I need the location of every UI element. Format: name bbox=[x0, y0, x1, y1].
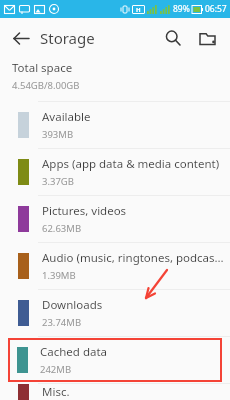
staticText: 1.39MB bbox=[42, 269, 76, 282]
staticText: Cached data bbox=[40, 344, 108, 360]
staticText: 3.37GB bbox=[42, 175, 74, 188]
button[interactable]: Audio (music, ringtones, podcas… bbox=[0, 243, 230, 289]
button[interactable]: Downloads bbox=[0, 290, 230, 336]
staticText: 62.63MB bbox=[42, 222, 82, 235]
staticText: Total space bbox=[12, 60, 73, 76]
staticText: 89% bbox=[173, 3, 190, 15]
button[interactable]: Misc. bbox=[0, 384, 230, 400]
staticText: H bbox=[136, 6, 141, 14]
staticText: Downloads bbox=[42, 297, 103, 313]
staticText: 4.54GB/8.00GB bbox=[12, 79, 80, 92]
staticText: 393MB bbox=[42, 128, 74, 141]
button[interactable]: Pictures, videos bbox=[0, 196, 230, 242]
staticText: Misc. bbox=[42, 384, 70, 400]
button[interactable]: Cached data bbox=[8, 338, 222, 382]
staticText: 242MB bbox=[40, 363, 72, 376]
button[interactable]: Back bbox=[6, 23, 36, 53]
staticText: 06:57 bbox=[205, 3, 227, 15]
staticText: Audio (music, ringtones, podcas… bbox=[42, 250, 224, 266]
button[interactable]: Available bbox=[0, 102, 230, 148]
button[interactable]: Share folder bbox=[190, 21, 224, 55]
staticText: 23.74MB bbox=[42, 316, 82, 329]
staticText: Pictures, videos bbox=[42, 203, 127, 219]
button[interactable]: Search bbox=[156, 21, 190, 55]
button[interactable]: Apps (app data & media content) bbox=[0, 149, 230, 195]
staticText: Available bbox=[42, 109, 91, 125]
staticText: Apps (app data & media content) bbox=[42, 156, 220, 172]
staticText: Storage bbox=[40, 28, 95, 48]
